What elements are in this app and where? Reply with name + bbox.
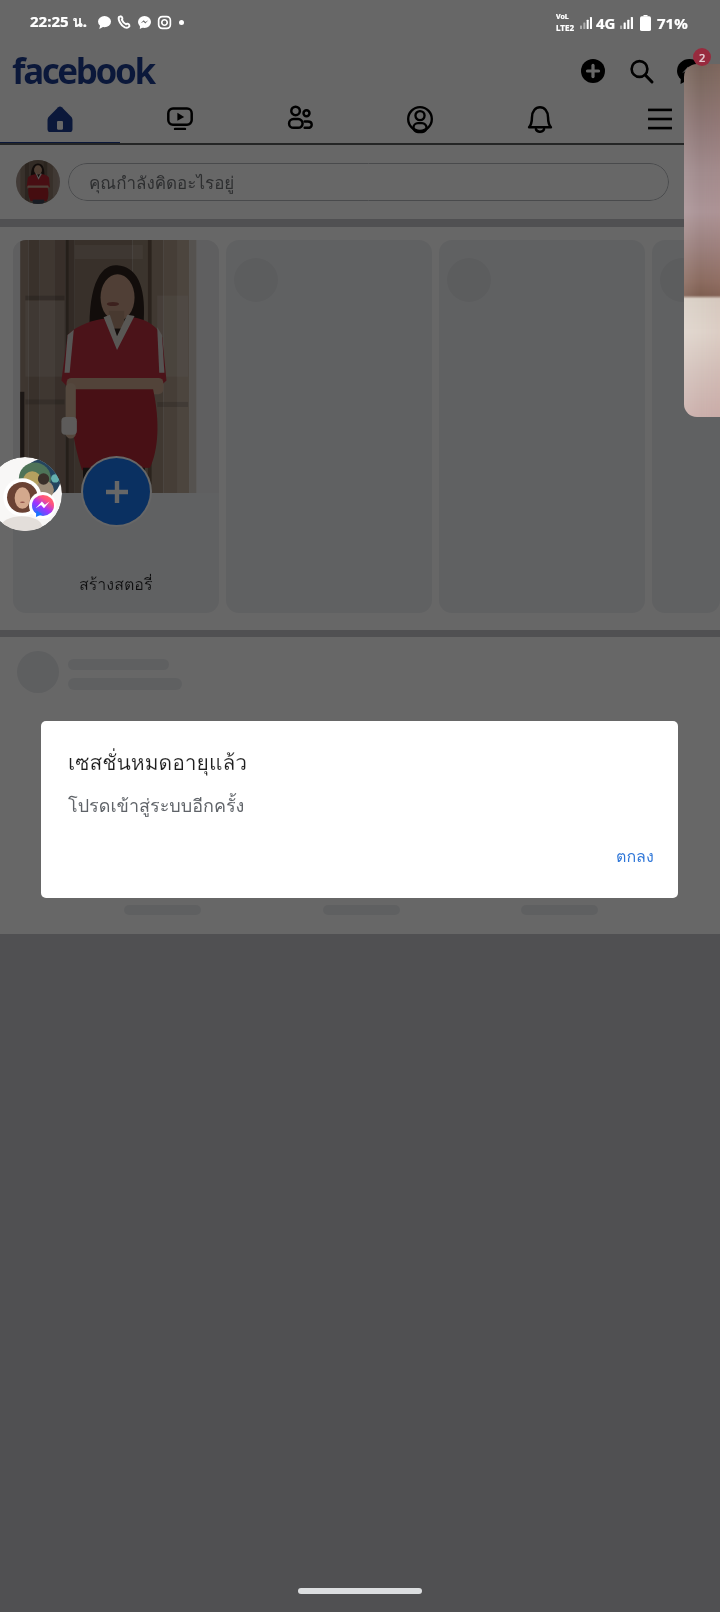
button[interactable]: Search <box>617 47 665 95</box>
staticText: ตกลง <box>616 844 654 869</box>
button[interactable]: Messenger <box>665 47 713 95</box>
button[interactable]: Notifications <box>480 98 600 145</box>
staticText: LTE2 <box>556 22 574 33</box>
staticText: คุณกำลังคิดอะไรอยู่ <box>89 169 235 196</box>
button[interactable]: Story <box>652 240 720 613</box>
staticText: 4G <box>596 13 616 33</box>
staticText: สร้างสตอรี่ <box>79 572 153 597</box>
button[interactable]: Friends <box>240 98 360 145</box>
button[interactable]: Video <box>120 98 240 145</box>
button[interactable]: Menu <box>600 98 720 145</box>
button[interactable]: Messenger chat head <box>0 457 62 531</box>
button[interactable]: Create <box>569 47 617 95</box>
button[interactable]: facebook <box>12 47 154 95</box>
button[interactable]: คุณกำลังคิดอะไรอยู่ <box>68 163 669 201</box>
button[interactable]: Add to story <box>83 458 150 525</box>
staticText: 71% <box>657 13 688 33</box>
button[interactable]: Photo <box>680 164 716 200</box>
staticText: facebook <box>12 47 154 95</box>
button[interactable]: Home <box>0 98 120 145</box>
staticText: 2 <box>699 50 706 65</box>
button[interactable]: Create story <box>13 240 219 613</box>
button[interactable]: Profile <box>360 98 480 145</box>
button[interactable]: Profile photo <box>16 160 60 204</box>
staticText: เซสชั่นหมดอายุแล้ว <box>68 746 248 779</box>
button[interactable]: ตกลง <box>602 840 668 873</box>
staticText: VoL <box>556 12 569 22</box>
staticText: 22:25 น. <box>30 10 87 34</box>
button[interactable]: Video call bubble <box>684 64 720 417</box>
staticText: โปรดเข้าสู่ระบบอีกครั้ง <box>68 791 245 820</box>
other: 2 unread messages <box>693 48 711 66</box>
